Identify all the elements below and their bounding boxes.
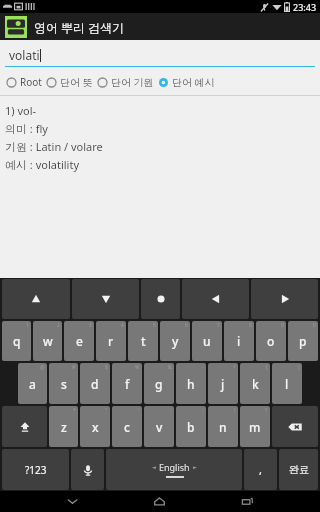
button[interactable]: 8 (224, 321, 254, 361)
button[interactable]: 완료 (279, 449, 318, 490)
staticText: d (91, 376, 99, 392)
staticText: 9 (281, 322, 284, 329)
button[interactable]: 0 (288, 321, 318, 361)
button[interactable]: $ (80, 363, 110, 404)
button[interactable]: Delete (272, 406, 318, 447)
staticText: m (249, 419, 261, 435)
staticText: + (233, 364, 236, 371)
button[interactable]: Root (4, 73, 44, 91)
button[interactable]: 9 (256, 321, 286, 361)
staticText: k (252, 376, 259, 392)
staticText: 1) vol- (5, 103, 37, 118)
staticText: ' (138, 407, 140, 414)
staticText: y (172, 333, 179, 349)
staticText: g (155, 376, 163, 392)
button[interactable]: 6 (160, 321, 190, 361)
button[interactable]: : (144, 406, 174, 447)
button[interactable]: - (176, 363, 206, 404)
button[interactable]: Move right (251, 279, 318, 319)
button[interactable]: & (144, 363, 174, 404)
staticText: 6 (185, 322, 188, 329)
button[interactable]: ◄ (106, 449, 242, 490)
button[interactable]: Recent apps (232, 491, 262, 512)
staticText: ?123 (25, 463, 47, 477)
staticText: 0 (313, 322, 316, 329)
button[interactable]: " (80, 406, 110, 447)
button[interactable]: 7 (192, 321, 222, 361)
button[interactable]: 단어 예시 (156, 73, 217, 91)
staticText: ; (202, 407, 204, 414)
button[interactable]: 1 (2, 321, 31, 361)
button[interactable]: Shift (2, 406, 47, 447)
staticText: 의미 : fly (5, 121, 48, 136)
staticText: w (43, 333, 53, 349)
button[interactable]: 5 (128, 321, 158, 361)
staticText: b (187, 419, 195, 435)
button[interactable]: ' (112, 406, 142, 447)
button[interactable]: 단어 기원 (95, 73, 156, 91)
staticText: u (203, 333, 211, 349)
staticText: 1 (26, 322, 29, 329)
staticText: ) (298, 364, 300, 371)
button[interactable]: Move up (2, 279, 70, 319)
staticText: x (92, 419, 99, 435)
button[interactable]: + (208, 363, 238, 404)
button[interactable]: * (49, 406, 78, 447)
staticText: 5 (153, 322, 156, 329)
button[interactable]: ) (272, 363, 302, 404)
staticText: q (13, 333, 21, 349)
button[interactable]: Select (141, 279, 180, 319)
staticText: n (219, 419, 227, 435)
staticText: 영어 뿌리 검색기 (34, 19, 125, 35)
staticText: volati (9, 47, 40, 63)
staticText: # (72, 364, 76, 371)
staticText: ◄ (152, 464, 156, 470)
staticText: 기원 : Latin / volare (5, 139, 103, 154)
button[interactable]: ? (240, 406, 270, 447)
staticText: v (156, 419, 163, 435)
button[interactable]: @ (18, 363, 47, 404)
button[interactable]: 4 (96, 321, 126, 361)
staticText: 8 (249, 322, 252, 329)
staticText: $ (105, 364, 108, 371)
button[interactable]: % (112, 363, 142, 404)
staticText: ? (265, 407, 268, 414)
button[interactable]: Voice input (71, 449, 104, 490)
staticText: p (299, 333, 307, 349)
button[interactable]: ; (176, 406, 206, 447)
staticText: % (135, 364, 140, 371)
button[interactable]: Move down (72, 279, 139, 319)
staticText: & (168, 364, 172, 371)
staticText: r (108, 333, 114, 349)
staticText: - (202, 364, 204, 371)
staticText: 단어 예시 (172, 75, 215, 89)
staticText: English (159, 461, 190, 473)
button[interactable]: Move left (182, 279, 249, 319)
staticText: i (237, 333, 241, 349)
staticText: 단어 뜻 (60, 75, 93, 89)
staticText: e (76, 333, 83, 349)
button[interactable]: 단어 뜻 (44, 73, 95, 91)
button[interactable]: , (244, 449, 277, 490)
button[interactable]: Home (144, 491, 174, 512)
button[interactable]: 2 (33, 321, 62, 361)
staticText: s (61, 376, 67, 392)
staticText: 4 (121, 322, 124, 329)
staticText: : (170, 407, 172, 414)
staticText: 3 (89, 322, 92, 329)
button[interactable]: ( (240, 363, 270, 404)
button[interactable]: ! (208, 406, 238, 447)
staticText: t (141, 333, 146, 349)
staticText: 2 (57, 322, 60, 329)
staticText: j (221, 376, 225, 392)
staticText: 예시 : volatility (5, 157, 79, 172)
staticText: a (29, 376, 36, 392)
staticText: ( (266, 364, 268, 371)
button[interactable]: Back (57, 491, 87, 512)
staticText: @ (40, 364, 45, 371)
button[interactable]: ?123 (2, 449, 69, 490)
staticText: 완료 (289, 463, 309, 476)
button[interactable]: # (49, 363, 78, 404)
staticText: ► (193, 464, 197, 470)
button[interactable]: 3 (64, 321, 94, 361)
